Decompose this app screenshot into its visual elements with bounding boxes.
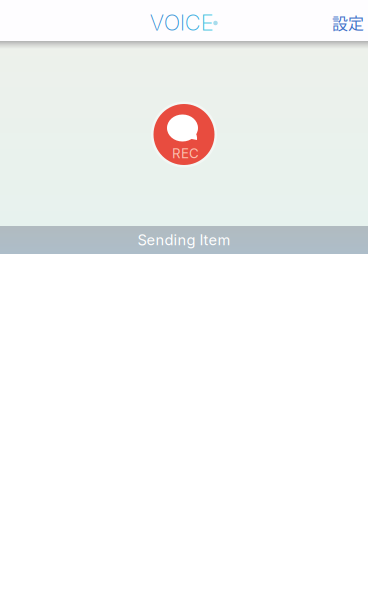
staticText: Sending Item <box>137 231 230 249</box>
staticText: E <box>201 9 214 36</box>
staticText: 設定 <box>332 11 364 34</box>
staticText: I <box>180 9 185 36</box>
staticText: O <box>164 9 180 36</box>
staticText: V <box>150 9 164 36</box>
button[interactable]: Record <box>153 104 214 165</box>
staticText: C <box>185 9 201 36</box>
button[interactable]: 設定 <box>325 3 368 38</box>
staticText: REC <box>172 145 199 161</box>
